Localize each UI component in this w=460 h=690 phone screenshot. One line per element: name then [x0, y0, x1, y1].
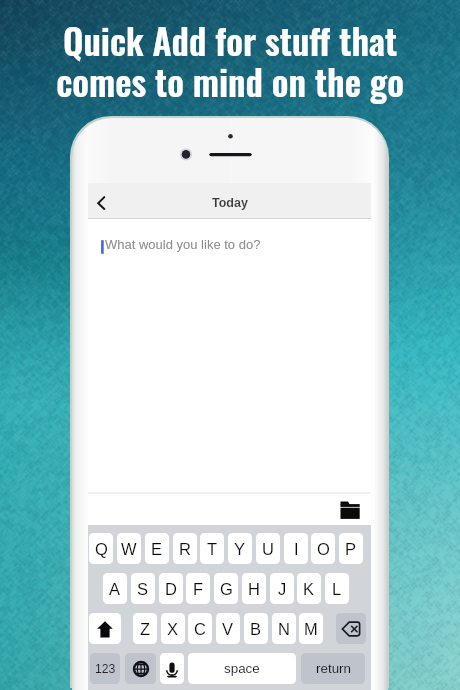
staticText: G — [220, 580, 233, 598]
button[interactable]: Folders — [334, 494, 371, 525]
staticText: J — [278, 580, 287, 598]
staticText: H — [248, 580, 260, 598]
button[interactable]: T — [200, 533, 224, 564]
staticText: W — [121, 540, 137, 558]
button[interactable]: E — [145, 533, 169, 564]
button[interactable]: Shift — [89, 613, 121, 644]
button[interactable]: J — [270, 573, 294, 604]
button[interactable]: A — [103, 573, 127, 604]
button[interactable]: return — [301, 653, 365, 684]
button[interactable]: Q — [89, 533, 113, 564]
button[interactable]: K — [297, 573, 321, 604]
button[interactable]: Next keyboard — [125, 653, 156, 684]
staticText: P — [345, 540, 357, 558]
staticText: Today — [212, 196, 248, 210]
staticText: space — [224, 661, 260, 676]
staticText: C — [194, 620, 206, 638]
staticText: Quick Add for stuff that comes to mind o… — [56, 14, 404, 107]
staticText: R — [179, 540, 191, 558]
staticText: D — [165, 580, 177, 598]
button[interactable]: B — [244, 613, 268, 644]
staticText: K — [303, 580, 315, 598]
staticText: I — [294, 540, 299, 558]
other: Dictate — [161, 658, 183, 680]
staticText: U — [262, 540, 274, 558]
button[interactable]: I — [284, 533, 308, 564]
button[interactable]: space — [188, 653, 296, 684]
button[interactable]: G — [214, 573, 238, 604]
staticText: N — [278, 620, 290, 638]
staticText: 123 — [95, 662, 116, 676]
staticText: Q — [95, 540, 108, 558]
staticText: X — [167, 620, 179, 638]
staticText: Y — [234, 540, 246, 558]
button[interactable]: Backspace — [336, 613, 366, 644]
button[interactable]: L — [325, 573, 349, 604]
button[interactable]: V — [216, 613, 240, 644]
staticText: return — [316, 661, 351, 676]
button[interactable]: C — [188, 613, 212, 644]
button[interactable]: X — [161, 613, 185, 644]
staticText: L — [332, 580, 342, 598]
staticText: What would you like to do? — [105, 237, 261, 252]
button[interactable]: D — [159, 573, 183, 604]
staticText: M — [304, 620, 318, 638]
button[interactable]: O — [311, 533, 335, 564]
button[interactable]: Back — [88, 185, 120, 217]
staticText: B — [250, 620, 262, 638]
button[interactable]: F — [186, 573, 210, 604]
button[interactable]: Y — [228, 533, 252, 564]
button[interactable]: Z — [133, 613, 157, 644]
other: Backspace — [338, 616, 364, 642]
button[interactable]: 123 — [90, 653, 120, 684]
staticText: E — [151, 540, 163, 558]
staticText: F — [193, 580, 204, 598]
button[interactable]: U — [256, 533, 280, 564]
button[interactable]: W — [117, 533, 141, 564]
staticText: V — [222, 620, 234, 638]
staticText: S — [137, 580, 149, 598]
button[interactable]: N — [272, 613, 296, 644]
button[interactable]: M — [299, 613, 323, 644]
button[interactable]: H — [242, 573, 266, 604]
button[interactable]: R — [173, 533, 197, 564]
button[interactable]: Dictate — [160, 653, 184, 684]
button[interactable]: S — [131, 573, 155, 604]
other: Next keyboard — [130, 658, 152, 680]
staticText: Z — [140, 620, 151, 638]
button[interactable]: P — [339, 533, 363, 564]
staticText: A — [109, 580, 121, 598]
staticText: O — [317, 540, 330, 558]
other: Shift — [94, 618, 116, 640]
staticText: T — [207, 540, 218, 558]
